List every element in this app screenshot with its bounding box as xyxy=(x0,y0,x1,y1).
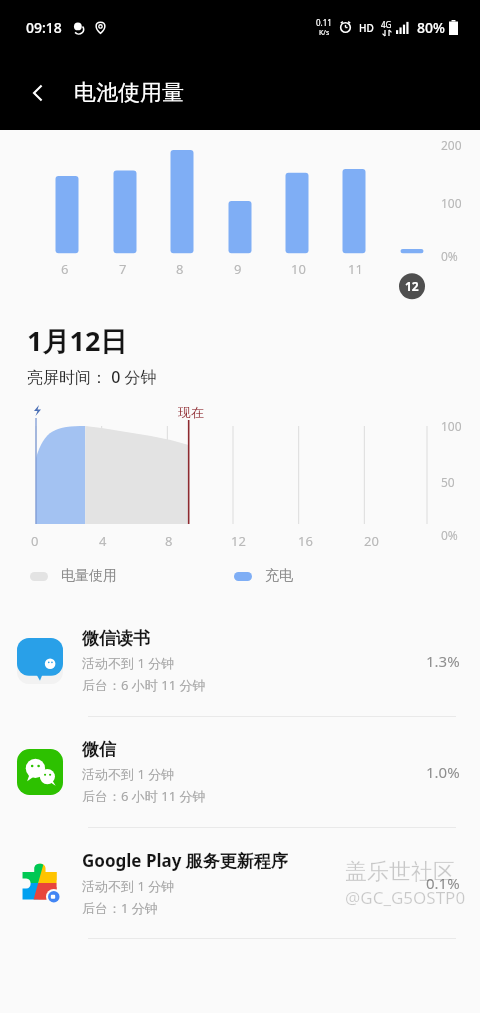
staticText: 后台：6 小时 11 分钟 xyxy=(82,787,206,805)
staticText: 0% xyxy=(441,527,458,543)
staticText: 微信 xyxy=(82,739,116,760)
staticText: K/s xyxy=(319,28,330,38)
staticText: 活动不到 1 分钟 xyxy=(82,654,175,672)
staticText: 9 xyxy=(234,260,242,278)
staticText: 10 xyxy=(291,260,306,278)
staticText: 09:18 xyxy=(26,18,62,37)
staticText: 7 xyxy=(119,260,127,278)
staticText: 11 xyxy=(348,260,363,278)
staticText: 亮屏时间： 0 分钟 xyxy=(27,366,157,388)
staticText: 充电 xyxy=(265,567,293,585)
button[interactable]: Google Play 服务更新程序 xyxy=(0,828,480,938)
staticText: 1.3% xyxy=(426,651,460,671)
staticText: 电量使用 xyxy=(61,567,117,585)
staticText: Google Play 服务更新程序 xyxy=(82,849,288,872)
staticText: 200 xyxy=(441,137,462,153)
staticText: 100 xyxy=(441,195,462,211)
staticText: 1月12日 xyxy=(27,322,128,359)
staticText: 8 xyxy=(176,260,184,278)
staticText: 16 xyxy=(298,532,313,550)
staticText: 100 xyxy=(441,418,462,434)
staticText: 活动不到 1 分钟 xyxy=(82,877,175,895)
staticText: 0% xyxy=(441,248,458,264)
staticText: 80% xyxy=(417,18,445,37)
staticText: 0 xyxy=(31,532,39,550)
staticText: 4 xyxy=(99,532,107,550)
staticText: 12 xyxy=(405,278,419,294)
staticText: 微信读书 xyxy=(82,628,150,649)
button[interactable]: 微信读书 xyxy=(0,606,480,716)
staticText: 12 xyxy=(231,532,246,550)
staticText: @GC_G5OSTP0 xyxy=(345,886,466,909)
staticText: 电池使用量 xyxy=(74,79,184,107)
staticText: 0.1% xyxy=(426,873,460,893)
staticText: 活动不到 1 分钟 xyxy=(82,765,175,783)
staticText: 20 xyxy=(364,532,379,550)
button[interactable]: Back xyxy=(14,69,62,117)
staticText: 后台：1 分钟 xyxy=(82,899,158,917)
staticText: 后台：6 小时 11 分钟 xyxy=(82,676,206,694)
staticText: 6 xyxy=(61,260,69,278)
staticText: 盖乐世社区 xyxy=(345,858,455,886)
button[interactable]: 微信 xyxy=(0,717,480,827)
staticText: 50 xyxy=(441,474,455,490)
staticText: 现在 xyxy=(178,404,204,420)
staticText: 4G xyxy=(381,19,392,30)
staticText: HD xyxy=(359,21,374,35)
staticText: 8 xyxy=(165,532,173,550)
staticText: 0.11 xyxy=(316,17,332,28)
staticText: 1.0% xyxy=(426,762,460,782)
